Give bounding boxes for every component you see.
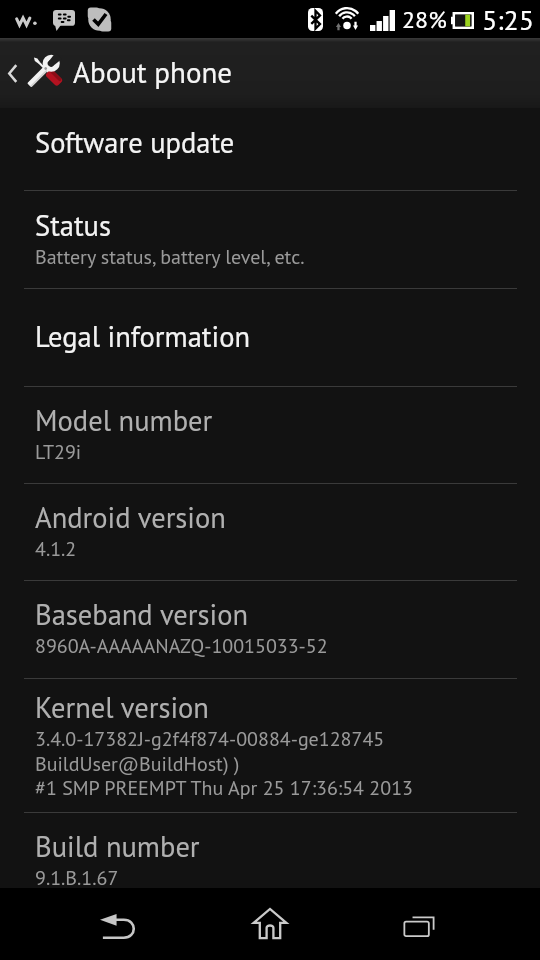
button[interactable]: Back [73,888,163,960]
staticText: Battery status, battery level, etc. [35,244,305,270]
staticText: Android version [35,499,226,536]
staticText: 28% [402,4,447,35]
staticText: 5:25 [482,1,534,37]
staticText: 9.1.B.1.67 [35,865,119,891]
button[interactable]: Build number [0,813,540,888]
staticText: Build number [35,828,200,865]
staticText: Status [35,207,111,244]
button[interactable]: Recent apps [375,888,465,960]
staticText: About phone [73,53,233,91]
button[interactable]: Navigate up, About phone [0,38,540,108]
button[interactable]: Kernel version [0,679,540,812]
button[interactable]: Model number [0,387,540,483]
button[interactable]: Legal information [0,289,540,386]
button[interactable]: Android version [0,484,540,580]
staticText: Baseband version [35,596,249,633]
staticText: 8960A-AAAAANAZQ-10015033-52 [35,633,328,659]
button[interactable]: Baseband version [0,581,540,678]
staticText: 4.1.2 [35,536,77,562]
staticText: LT29i [35,439,82,465]
staticText: Model number [35,402,213,439]
button[interactable]: Status [0,191,540,288]
button[interactable]: Software update [0,108,540,190]
staticText: Legal information [35,318,251,355]
staticText: Software update [35,124,235,161]
staticText: Kernel version [35,689,209,726]
button[interactable]: Home [225,888,315,960]
staticText: 3.4.0-17382J-g2f4f874-00884-ge128745 Bui… [35,726,413,801]
